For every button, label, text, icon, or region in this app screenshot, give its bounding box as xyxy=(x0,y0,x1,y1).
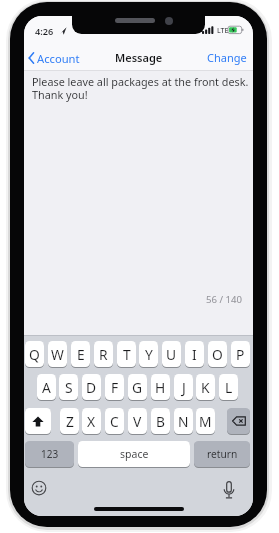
button[interactable]: G xyxy=(128,374,147,400)
staticText: B xyxy=(156,412,165,431)
button[interactable]: B xyxy=(151,408,170,434)
button[interactable]: Account xyxy=(27,50,112,67)
button[interactable]: M xyxy=(196,408,215,434)
staticText: return xyxy=(207,447,238,461)
staticText: Account xyxy=(37,51,80,66)
button[interactable]: R xyxy=(94,341,113,367)
button[interactable]: I xyxy=(185,341,204,367)
staticText: C xyxy=(110,412,119,431)
staticText: Change xyxy=(207,50,247,65)
button[interactable]: D xyxy=(82,374,101,400)
staticText: space xyxy=(120,447,149,461)
staticText: Please leave all packages at the front d… xyxy=(32,74,249,89)
button[interactable]: H xyxy=(151,374,170,400)
staticText: 4:26 xyxy=(35,25,54,38)
button[interactable]: T xyxy=(117,341,136,367)
button[interactable]: C xyxy=(105,408,124,434)
button[interactable]: K xyxy=(196,374,215,400)
staticText: 123 xyxy=(41,447,59,461)
button[interactable]: Change xyxy=(177,50,247,65)
staticText: L xyxy=(225,378,233,397)
button[interactable]: A xyxy=(37,374,56,400)
button[interactable]: Y xyxy=(139,341,158,367)
staticText: K xyxy=(201,378,210,397)
staticText: T xyxy=(123,345,131,364)
staticText: Y xyxy=(145,345,153,364)
button[interactable]: P xyxy=(231,341,250,367)
button[interactable] xyxy=(25,408,51,434)
staticText: D xyxy=(86,378,97,397)
staticText: LTE xyxy=(217,26,229,36)
button[interactable]: 123 xyxy=(25,441,74,467)
staticText: H xyxy=(155,378,166,397)
staticText: Q xyxy=(29,345,40,364)
button[interactable]: N xyxy=(174,408,193,434)
staticText: E xyxy=(77,345,85,364)
staticText: P xyxy=(236,345,245,364)
button[interactable]: J xyxy=(174,374,193,400)
staticText: X xyxy=(87,412,96,431)
staticText: N xyxy=(178,412,189,431)
button[interactable]: Q xyxy=(25,341,44,367)
staticText: Z xyxy=(66,412,74,431)
button[interactable]: space xyxy=(78,441,190,467)
button[interactable]: Z xyxy=(60,408,79,434)
staticText: A xyxy=(42,378,51,397)
button[interactable]: S xyxy=(59,374,78,400)
staticText: Thank you! xyxy=(32,87,88,102)
staticText: 56 / 140 xyxy=(206,293,242,306)
staticText: Message xyxy=(115,50,163,65)
button[interactable]: V xyxy=(128,408,147,434)
button[interactable]: return xyxy=(194,441,250,467)
button[interactable] xyxy=(218,477,240,503)
button[interactable]: F xyxy=(105,374,124,400)
staticText: O xyxy=(212,345,223,364)
button[interactable] xyxy=(27,476,51,500)
button[interactable]: X xyxy=(82,408,101,434)
button[interactable]: E xyxy=(71,341,90,367)
staticText: S xyxy=(65,378,73,397)
staticText: F xyxy=(111,378,119,397)
button[interactable]: U xyxy=(162,341,181,367)
staticText: R xyxy=(99,345,108,364)
staticText: G xyxy=(132,378,143,397)
staticText: M xyxy=(199,412,212,431)
staticText: V xyxy=(133,412,142,431)
staticText: J xyxy=(182,378,186,397)
button[interactable]: O xyxy=(208,341,227,367)
staticText: U xyxy=(166,345,177,364)
staticText: W xyxy=(51,345,64,364)
button[interactable]: L xyxy=(219,374,238,400)
button[interactable]: W xyxy=(48,341,67,367)
staticText: I xyxy=(192,345,197,364)
button[interactable] xyxy=(227,408,250,434)
